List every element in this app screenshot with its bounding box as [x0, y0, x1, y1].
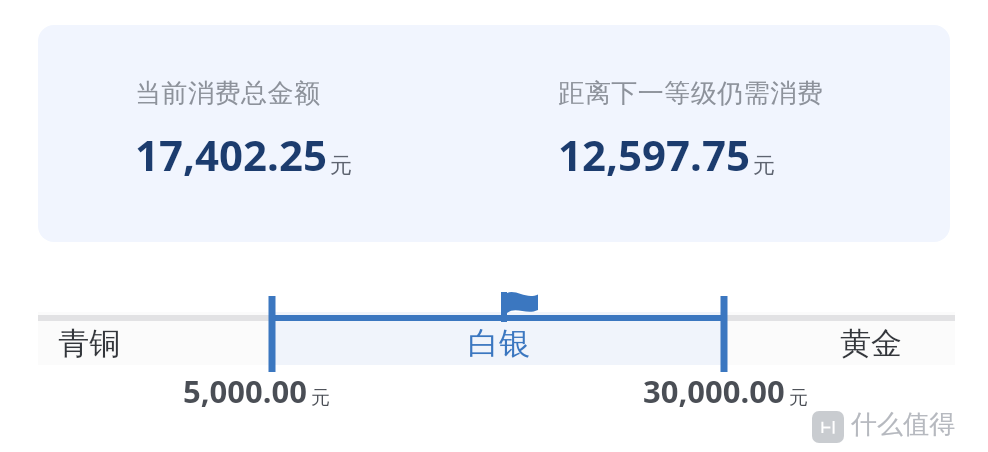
staticText: 白银 — [434, 324, 564, 363]
staticText: 5,000.00 — [183, 370, 307, 412]
staticText: 元 — [330, 152, 352, 180]
button[interactable]: 白银 — [0, 324, 988, 363]
staticText: 黄金 — [840, 324, 902, 363]
staticText: 元 — [311, 386, 330, 410]
staticText: 距离下一等级仍需消费 — [558, 77, 823, 110]
staticText: 30,000.00 — [643, 370, 785, 412]
staticText: 元 — [789, 386, 808, 410]
staticText: 12,597.75 — [558, 126, 750, 183]
button[interactable]: 黄金 — [840, 324, 902, 363]
staticText: 元 — [753, 152, 775, 180]
button[interactable]: 青铜 — [58, 324, 120, 363]
staticText: 17,402.25 — [135, 126, 327, 183]
staticText: 青铜 — [58, 324, 120, 363]
staticText: 当前消费总金额 — [135, 77, 321, 110]
button[interactable]: 当前消费总金额 — [38, 25, 950, 242]
other: 什么值得买 watermark — [812, 408, 972, 446]
staticText: 什么值得买 — [851, 408, 972, 446]
